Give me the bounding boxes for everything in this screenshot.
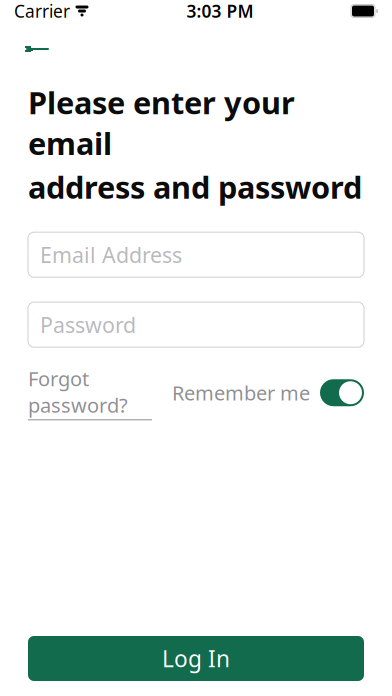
staticText: Please enter your email [28,82,295,163]
staticText: Remember me [172,379,310,406]
staticText: Forgot password? [28,365,128,418]
staticText: 3:03 PM [186,0,253,22]
staticText: address and password [28,166,362,207]
staticText: Password [40,310,136,339]
button[interactable]: Forgot password? [28,365,152,420]
staticText: Carrier [14,0,70,22]
staticText: Log In [162,643,230,673]
staticText: Email Address [40,240,182,269]
staticText [70,0,75,22]
button[interactable]: Log In [28,636,364,681]
button[interactable]: Remember me [172,379,364,406]
button[interactable]: Back [16,34,60,64]
